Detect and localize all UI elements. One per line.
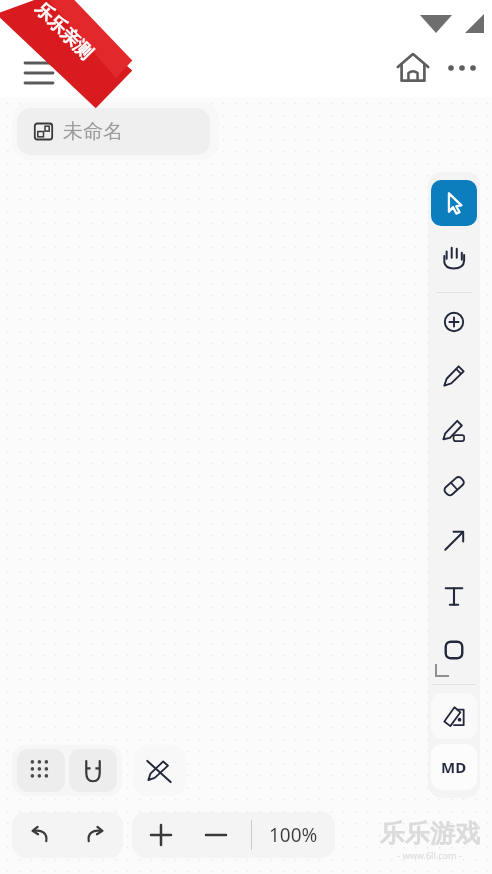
button[interactable]: Zoom in [132,812,190,858]
button[interactable]: Home [394,48,432,86]
button[interactable]: Snap to grid [69,749,117,792]
button[interactable]: Undo [12,812,67,858]
button[interactable]: Select [431,180,477,226]
button[interactable]: Redo [67,812,122,858]
button[interactable]: Back [60,50,96,86]
staticText: MD [441,757,467,777]
staticText: 乐乐游戏 [380,818,480,849]
button[interactable]: Color palette [431,693,477,739]
button[interactable]: More options [444,50,480,86]
staticText: 乐乐亲测 [30,0,97,65]
button[interactable]: MD [431,744,477,790]
button[interactable]: 未命名 [12,103,219,160]
button[interactable]: Menu [20,50,56,86]
button[interactable]: Disable stylus [133,745,186,796]
staticText: 未命名 [63,119,123,144]
button[interactable]: Highlighter [431,408,477,454]
button[interactable]: Text [431,573,477,619]
button[interactable]: Eraser [431,463,477,509]
button[interactable]: Grid [17,749,65,792]
button[interactable]: Pen [431,353,477,399]
staticText: 100% [269,822,318,848]
button[interactable]: Shape [431,627,477,673]
staticText: - www.6ll.com - [397,849,462,861]
button[interactable]: Add [431,299,477,345]
button[interactable]: Arrow [431,518,477,564]
button[interactable]: Zoom out [187,812,245,858]
button[interactable]: 100% [252,812,335,858]
button[interactable]: Pan [431,233,477,279]
